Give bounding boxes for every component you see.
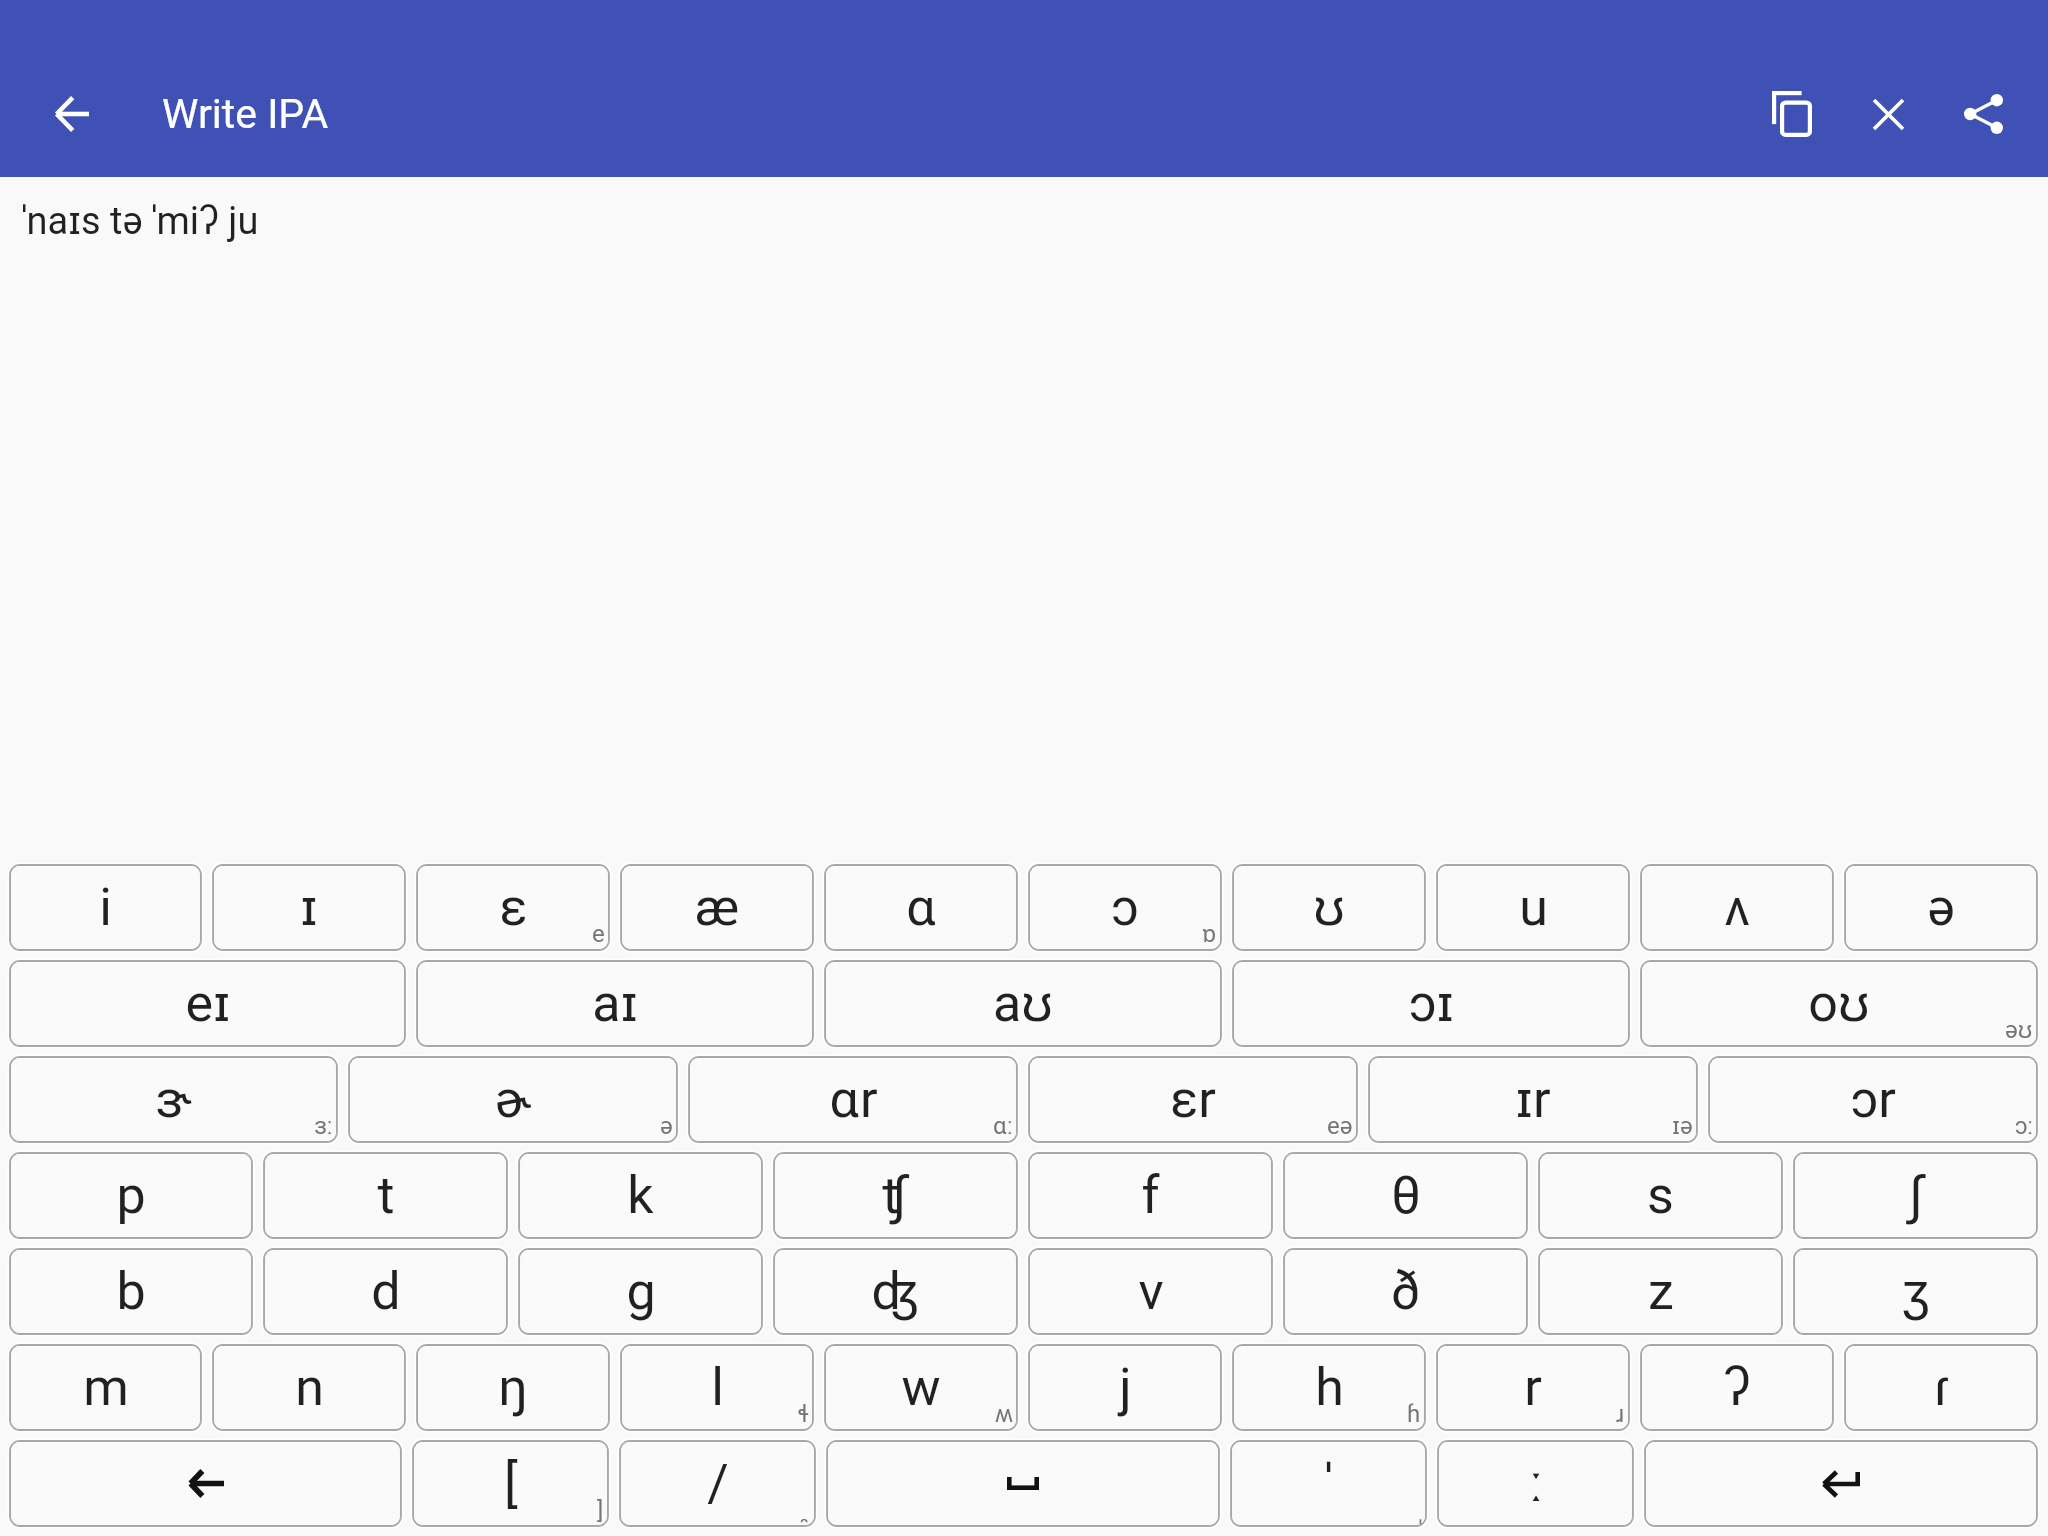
staticText: ɔ xyxy=(1111,877,1139,938)
button[interactable]: Space xyxy=(826,1440,1220,1527)
button[interactable]: ɔr xyxy=(1708,1056,2038,1143)
button[interactable]: aɪ xyxy=(416,960,814,1047)
staticText: ɛ xyxy=(499,877,528,938)
button[interactable]: b xyxy=(9,1248,253,1335)
staticText: oʊ xyxy=(1808,973,1870,1034)
button[interactable]: i xyxy=(9,864,202,951)
button[interactable]: f xyxy=(1028,1152,1273,1239)
button[interactable]: t xyxy=(263,1152,508,1239)
staticText: ɑr xyxy=(829,1069,878,1130)
staticText: ɑː xyxy=(993,1112,1013,1140)
button[interactable]: Back xyxy=(24,66,120,162)
button[interactable]: θ xyxy=(1283,1152,1528,1239)
button[interactable]: oʊ xyxy=(1640,960,2038,1047)
staticText: æ xyxy=(695,877,739,938)
staticText: ] xyxy=(597,1496,604,1524)
button[interactable]: z xyxy=(1538,1248,1783,1335)
button[interactable]: d xyxy=(263,1248,508,1335)
button[interactable]: p xyxy=(9,1152,253,1239)
staticText: ʊ xyxy=(1313,877,1345,938)
button[interactable]: ˈ xyxy=(1230,1440,1427,1527)
button[interactable]: n xyxy=(212,1344,406,1431)
button[interactable]: Clear text xyxy=(1840,66,1936,162)
button[interactable]: eɪ xyxy=(9,960,406,1047)
staticText: ɔr xyxy=(1851,1069,1896,1130)
staticText: ə xyxy=(1927,877,1955,938)
button[interactable]: ɑ xyxy=(824,864,1018,951)
button[interactable]: / xyxy=(619,1440,816,1527)
button[interactable]: ɪr xyxy=(1368,1056,1698,1143)
button[interactable]: r xyxy=(1436,1344,1630,1431)
staticText: r xyxy=(1524,1357,1542,1418)
button[interactable]: ð xyxy=(1283,1248,1528,1335)
staticText: ɔː xyxy=(2015,1112,2033,1140)
button[interactable]: aʊ xyxy=(824,960,1222,1047)
staticText: / xyxy=(707,1453,729,1514)
staticText: aʊ xyxy=(993,973,1053,1034)
button[interactable]: ʔ xyxy=(1640,1344,1834,1431)
staticText: ʃ xyxy=(1905,1165,1927,1226)
staticText: d xyxy=(371,1261,401,1322)
staticText: w xyxy=(901,1357,941,1418)
staticText: i xyxy=(99,877,112,938)
staticText: ˈnaɪs tə ˈmiʔ ju xyxy=(22,199,259,244)
button[interactable]: ɔɪ xyxy=(1232,960,1630,1047)
staticText: v xyxy=(1138,1261,1164,1322)
staticText: ð xyxy=(1390,1261,1421,1322)
button[interactable]: [ xyxy=(412,1440,609,1527)
button[interactable]: ɛr xyxy=(1028,1056,1358,1143)
staticText: əʊ xyxy=(2005,1016,2033,1044)
button[interactable]: ʒ xyxy=(1793,1248,2038,1335)
button[interactable]: ə xyxy=(1844,864,2038,951)
button[interactable]: m xyxy=(9,1344,202,1431)
button[interactable]: Copy xyxy=(1744,66,1840,162)
button[interactable]: ɚ xyxy=(348,1056,678,1143)
button[interactable]: ɛ xyxy=(416,864,610,951)
staticText: f xyxy=(1141,1165,1160,1226)
button[interactable]: g xyxy=(518,1248,763,1335)
button[interactable]: ɾ xyxy=(1844,1344,2038,1431)
button[interactable]: æ xyxy=(620,864,814,951)
staticText: eɪ xyxy=(185,973,231,1034)
staticText: b xyxy=(116,1261,146,1322)
staticText: ɾ xyxy=(1934,1357,1949,1418)
button[interactable]: ŋ xyxy=(416,1344,610,1431)
button[interactable]: s xyxy=(1538,1152,1783,1239)
button[interactable]: ʊ xyxy=(1232,864,1426,951)
button[interactable]: ɪ xyxy=(212,864,406,951)
button[interactable]: ɔ xyxy=(1028,864,1222,951)
staticText: ʌ xyxy=(1724,877,1750,938)
button[interactable]: ʤ xyxy=(773,1248,1018,1335)
button[interactable]: ɝ xyxy=(9,1056,338,1143)
staticText: ɪ xyxy=(300,877,318,938)
staticText: ɦ xyxy=(1407,1400,1421,1428)
button[interactable]: ɑr xyxy=(688,1056,1018,1143)
staticText: p xyxy=(116,1165,146,1226)
staticText: z xyxy=(1648,1261,1674,1322)
button[interactable]: j xyxy=(1028,1344,1222,1431)
button[interactable]: Enter xyxy=(1644,1440,2038,1527)
staticText: ɪr xyxy=(1515,1069,1551,1130)
staticText: θ xyxy=(1391,1165,1421,1226)
staticText: aɪ xyxy=(592,973,638,1034)
button[interactable]: ʌ xyxy=(1640,864,1834,951)
staticText: j xyxy=(1119,1357,1132,1418)
button[interactable]: u xyxy=(1436,864,1630,951)
staticText: ɛr xyxy=(1170,1069,1216,1130)
button[interactable]: Backspace xyxy=(9,1440,402,1527)
staticText: ʒ xyxy=(1901,1261,1931,1322)
button[interactable]: ˈnaɪs tə ˈmiʔ ju xyxy=(0,177,2048,864)
staticText: Write IPA xyxy=(162,90,329,138)
button[interactable]: w xyxy=(824,1344,1018,1431)
staticText: [ xyxy=(504,1453,518,1514)
button[interactable]: l xyxy=(620,1344,814,1431)
staticText: ː xyxy=(1530,1453,1542,1514)
button[interactable]: k xyxy=(518,1152,763,1239)
button[interactable]: Share xyxy=(1936,66,2032,162)
button[interactable]: ʧ xyxy=(773,1152,1018,1239)
button[interactable]: ʃ xyxy=(1793,1152,2038,1239)
button[interactable]: h xyxy=(1232,1344,1426,1431)
button[interactable]: ː xyxy=(1437,1440,1634,1527)
staticText: eə xyxy=(1327,1112,1353,1140)
button[interactable]: v xyxy=(1028,1248,1273,1335)
